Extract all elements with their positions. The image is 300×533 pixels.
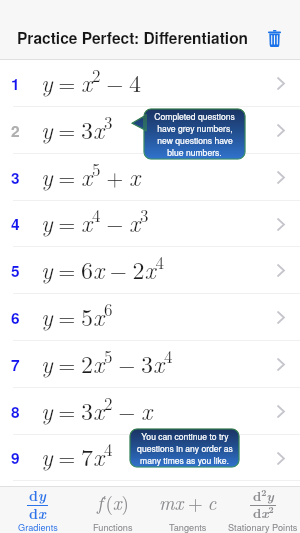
- staticText: mx + c: [159, 489, 217, 516]
- staticText: y = 3x3: [41, 110, 113, 146]
- button[interactable]: 7: [0, 341, 300, 388]
- button[interactable]: 5: [0, 247, 300, 294]
- staticText: have grey numbers,: [157, 122, 233, 134]
- staticText: You can continue to try: [141, 430, 229, 442]
- staticText: f′(x): [97, 489, 129, 516]
- staticText: dx2: [253, 503, 274, 522]
- staticText: y = 2x5 − 3x4: [41, 344, 173, 380]
- staticText: dy: [29, 485, 46, 505]
- button[interactable]: 4: [0, 201, 300, 247]
- staticText: 9: [11, 447, 20, 469]
- staticText: y = 7x4: [41, 437, 113, 473]
- staticText: 7: [11, 354, 20, 376]
- staticText: Completed questions: [154, 110, 235, 122]
- staticText: Practice Perfect: Differentiation: [17, 27, 249, 49]
- staticText: y = x5 + x: [41, 157, 141, 193]
- button[interactable]: 2: [0, 107, 300, 154]
- button[interactable]: mx + c: [150, 487, 225, 533]
- staticText: blue numbers.: [167, 146, 222, 158]
- staticText: y = 3x2 − x: [41, 391, 153, 427]
- staticText: 1: [11, 73, 20, 95]
- button[interactable]: 6: [0, 294, 300, 341]
- staticText: y = x2 − 4: [41, 63, 141, 99]
- staticText: Gradients: [18, 520, 58, 533]
- staticText: Stationary Points: [228, 520, 298, 533]
- staticText: y = x4 − x3: [41, 203, 149, 239]
- staticText: y = 6x − 2x4: [41, 250, 165, 286]
- staticText: 6: [11, 307, 20, 329]
- button[interactable]: 1: [0, 60, 300, 107]
- staticText: dx: [29, 503, 46, 523]
- staticText: 8: [11, 401, 20, 423]
- staticText: new questions have: [157, 134, 233, 146]
- button[interactable]: dy: [0, 487, 75, 533]
- staticText: many times as you like.: [140, 454, 229, 466]
- button[interactable]: f′(x): [75, 487, 150, 533]
- staticText: Functions: [93, 520, 133, 533]
- button[interactable]: 8: [0, 388, 300, 435]
- staticText: d2y: [253, 486, 274, 505]
- staticText: Tangents: [169, 520, 207, 533]
- button[interactable]: 9: [0, 435, 300, 481]
- staticText: questions in any order as: [137, 442, 233, 454]
- button[interactable]: 3: [0, 154, 300, 201]
- button[interactable]: d2y: [225, 487, 300, 533]
- staticText: 5: [11, 260, 20, 282]
- staticText: y = 5x6: [41, 297, 113, 333]
- staticText: 4: [11, 213, 20, 235]
- button[interactable]: Delete: [261, 25, 287, 51]
- staticText: 2: [11, 120, 20, 142]
- staticText: 3: [11, 167, 20, 189]
